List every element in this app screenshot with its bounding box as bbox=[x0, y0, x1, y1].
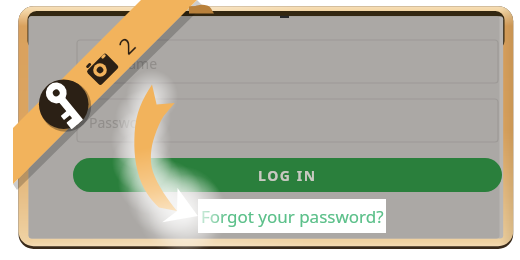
staticText: Username bbox=[89, 54, 158, 73]
staticText: Password bbox=[89, 113, 153, 132]
staticText: 2 bbox=[111, 30, 142, 60]
button[interactable]: LOG IN bbox=[73, 158, 502, 192]
button[interactable]: Forgot your password? bbox=[198, 199, 386, 233]
staticText: Forgot your password? bbox=[201, 205, 384, 228]
staticText: LOG IN bbox=[258, 166, 317, 185]
